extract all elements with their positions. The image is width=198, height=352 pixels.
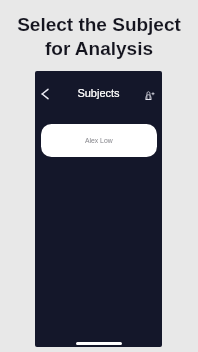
button[interactable]: Back: [35, 82, 57, 106]
button[interactable]: Add subject: [138, 83, 162, 107]
staticText: Alex Low: [85, 137, 113, 145]
staticText: Select the Subject for Analysis: [0, 14, 198, 59]
staticText: Subjects: [35, 87, 162, 99]
button[interactable]: Alex Low: [41, 124, 157, 157]
